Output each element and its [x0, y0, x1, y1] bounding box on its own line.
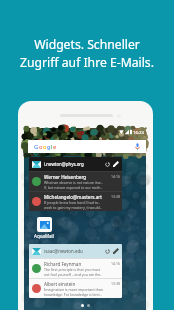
- other: Voice search: [135, 143, 140, 150]
- staticText: isaac@newton.edu: [44, 248, 83, 254]
- staticText: o: [43, 143, 47, 151]
- button[interactable]: Compose: [112, 160, 120, 168]
- staticText: Michelangelo@masters.art: [44, 194, 102, 200]
- button[interactable]: Michelangelo@masters.art: [32, 192, 120, 211]
- staticText: lf, but nature exposed to our meth..: [44, 185, 103, 190]
- staticText: 14:16: [111, 174, 120, 179]
- staticText: knowledge. For knowledge is limit..: [44, 292, 102, 297]
- staticText: Richard Feynman: [44, 261, 82, 267]
- staticText: If people knew how hard I had to..: [44, 200, 101, 205]
- button[interactable]: Werner Heisenberg: [32, 172, 120, 191]
- staticText: What we observe is not nature itse..: [44, 180, 103, 185]
- staticText: work to gain my mastery, it would..: [44, 205, 102, 210]
- staticText: l: [51, 143, 53, 151]
- staticText: 16:23: [133, 129, 144, 135]
- button[interactable]: isaac@newton.edu: [32, 244, 120, 258]
- button[interactable]: Richard Feynman: [32, 259, 120, 278]
- staticText: The first principle is that you must: [44, 267, 100, 272]
- staticText: 14:16: [111, 261, 120, 266]
- button[interactable]: Albert einstein: [32, 279, 120, 298]
- staticText: G: [34, 143, 39, 151]
- button[interactable]: Refresh: [103, 247, 111, 255]
- button[interactable]: i.newton@phys.org: [32, 157, 120, 171]
- button[interactable]: G: [28, 140, 146, 153]
- staticText: e: [53, 143, 57, 151]
- button[interactable]: AquaMail: [34, 217, 54, 238]
- staticText: i.newton@phys.org: [44, 161, 84, 167]
- staticText: Albert einstein: [44, 281, 76, 287]
- staticText: o: [39, 143, 43, 151]
- staticText: AquaMail: [34, 233, 54, 239]
- staticText: Zugriff auf Ihre E-Mails.: [20, 54, 154, 71]
- staticText: Widgets. Schneller: [34, 36, 140, 53]
- staticText: 13:38: [111, 281, 120, 286]
- staticText: Werner Heisenberg: [44, 174, 87, 180]
- button[interactable]: Refresh: [103, 160, 111, 168]
- staticText: 13:38: [111, 194, 120, 199]
- button[interactable]: Compose: [112, 247, 120, 255]
- staticText: Imagination is more important than: [44, 287, 104, 292]
- staticText: g: [47, 143, 51, 151]
- staticText: not fool yourself – and you are the..: [44, 272, 103, 277]
